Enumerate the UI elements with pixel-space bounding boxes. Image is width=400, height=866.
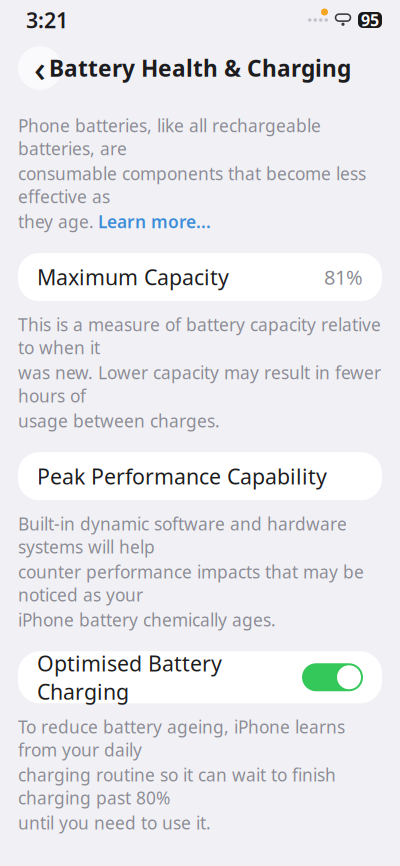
button[interactable]: Optimised Battery Charging [18,651,382,703]
staticText: Phone batteries, like all rechargeable b… [18,114,321,160]
button[interactable]: Learn more... [98,210,211,233]
staticText: Maximum Capacity [37,263,229,291]
button[interactable]: Back [18,46,62,90]
staticText: Learn more... [98,210,211,233]
staticText: they age. [18,210,94,233]
staticText: Battery Health & Charging [49,53,351,83]
staticText: charging routine so it can wait to finis… [18,763,336,809]
staticText: consumable components that become less e… [18,162,366,208]
button[interactable]: Peak Performance Capability [18,452,382,500]
staticText: ‹ [34,44,46,92]
staticText: Optimised Battery Charging [37,649,222,706]
staticText: iPhone battery chemically ages. [18,608,276,631]
staticText: usage between charges. [18,409,220,432]
staticText: until you need to use it. [18,811,211,834]
staticText: 95 [361,9,379,31]
staticText: To reduce battery ageing, iPhone learns … [18,715,345,761]
staticText: was new. Lower capacity may result in fe… [18,361,381,407]
staticText: 81% [324,264,363,290]
staticText: Built-in dynamic software and hardware s… [18,512,347,558]
button[interactable]: Maximum Capacity [18,253,382,301]
staticText: 3:21 [26,6,68,34]
staticText: counter performance impacts that may be … [18,560,364,606]
staticText: This is a measure of battery capacity re… [18,313,381,359]
staticText: Peak Performance Capability [37,462,327,490]
